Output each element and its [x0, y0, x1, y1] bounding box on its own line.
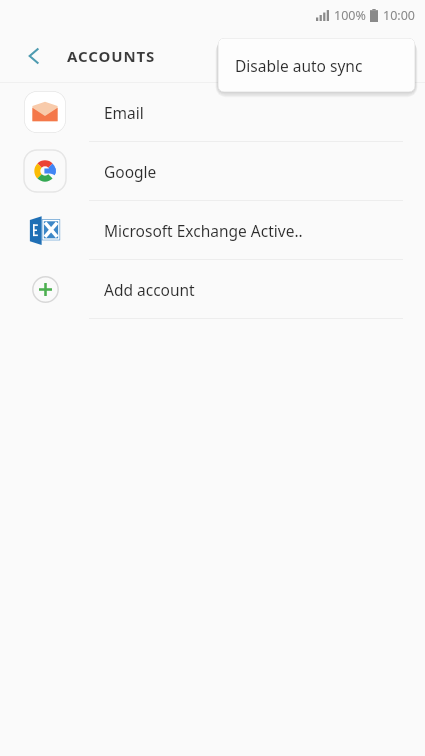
button[interactable]: Back: [12, 34, 56, 78]
staticText: Microsoft Exchange Active..: [104, 220, 303, 241]
button[interactable]: Microsoft Exchange Active..: [0, 201, 425, 259]
staticText: Add account: [104, 279, 195, 300]
staticText: Disable auto sync: [235, 55, 363, 76]
button[interactable]: Disable auto sync: [218, 38, 415, 92]
staticText: Google: [104, 161, 157, 182]
button[interactable]: Add account: [0, 260, 425, 318]
button[interactable]: Email: [0, 83, 425, 141]
staticText: 100%: [334, 7, 366, 24]
button[interactable]: Google: [0, 142, 425, 200]
staticText: 10:00: [383, 7, 415, 24]
staticText: Email: [104, 102, 144, 123]
staticText: ACCOUNTS: [67, 46, 156, 66]
